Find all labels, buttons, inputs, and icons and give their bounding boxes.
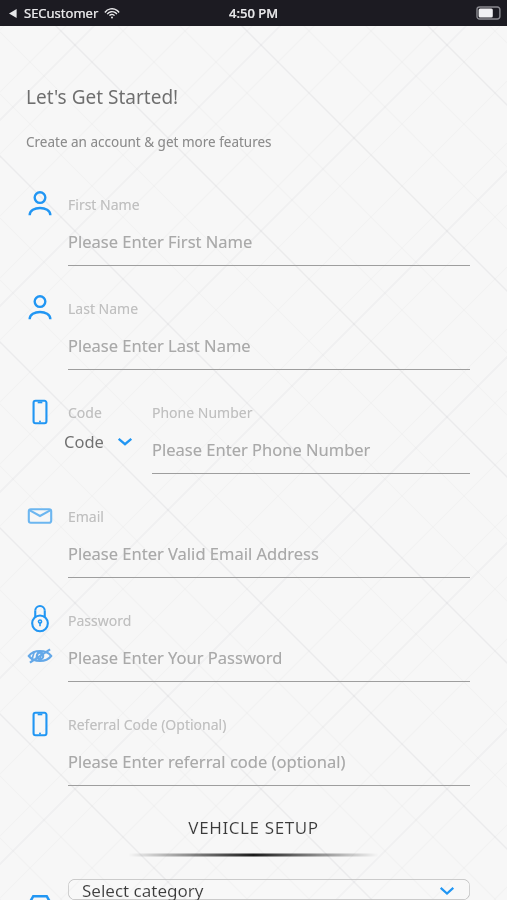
staticText: Phone Number <box>152 403 253 422</box>
other: Select country code <box>116 432 134 450</box>
button[interactable]: Referral code <box>0 698 507 802</box>
staticText: Select category <box>82 879 204 900</box>
staticText: 4:50 PM <box>229 4 279 22</box>
other: Referral code <box>26 710 54 738</box>
button[interactable]: Code <box>64 430 134 452</box>
staticText: Please Enter Last Name <box>68 334 251 356</box>
button[interactable]: First name <box>0 178 507 282</box>
other: Phone <box>26 398 54 426</box>
button[interactable]: Last name <box>0 282 507 386</box>
staticText: Last Name <box>68 299 139 318</box>
button[interactable]: Email <box>0 490 507 594</box>
other: Email <box>26 502 54 530</box>
other: Vehicle category <box>26 889 54 900</box>
staticText: Let's Get Started! <box>26 84 179 110</box>
staticText: Please Enter First Name <box>68 230 253 252</box>
staticText: Please Enter Your Password <box>68 646 283 668</box>
staticText: Referral Code (Optional) <box>68 715 227 734</box>
staticText: VEHICLE SETUP <box>0 816 507 839</box>
staticText: First Name <box>68 195 140 214</box>
staticText: Code <box>64 430 104 452</box>
staticText: Create an account & get more features <box>26 133 272 151</box>
button[interactable]: Password <box>0 594 507 698</box>
other: First name <box>26 190 54 218</box>
other: Last name <box>26 294 54 322</box>
other: Password <box>26 606 54 634</box>
staticText: Email <box>68 507 104 526</box>
button[interactable]: Please Enter Phone Number <box>152 438 371 460</box>
staticText: Code <box>68 403 102 422</box>
staticText: SECustomer <box>24 4 99 22</box>
staticText: Please Enter Valid Email Address <box>68 542 319 564</box>
staticText: Password <box>68 611 132 630</box>
staticText: Please Enter referral code (optional) <box>68 750 346 772</box>
button[interactable]: Select category <box>68 879 470 900</box>
button[interactable]: Show password <box>26 642 54 670</box>
